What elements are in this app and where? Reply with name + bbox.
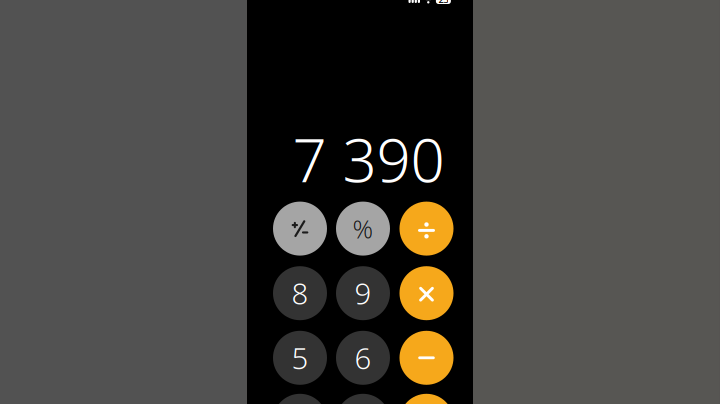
button[interactable]: Plus — [399, 394, 453, 404]
button[interactable]: 8 — [273, 266, 327, 320]
staticText: 23 — [438, 0, 448, 6]
button[interactable]: 9 — [336, 266, 390, 320]
button[interactable]: Multiply — [399, 266, 453, 320]
staticText: 8 — [291, 274, 308, 313]
staticText: 5 — [291, 338, 308, 377]
button[interactable]: % — [336, 202, 390, 256]
button[interactable]: Minus — [399, 331, 453, 385]
button[interactable]: Divide — [399, 202, 453, 256]
staticText: 6 — [354, 338, 371, 377]
button[interactable]: Plus Minus — [273, 202, 327, 256]
button[interactable]: 5 — [273, 331, 327, 385]
button[interactable]: 3 — [336, 394, 390, 404]
button[interactable]: 2 — [273, 394, 327, 404]
staticText: 9 — [354, 274, 371, 313]
staticText: 7 390 — [292, 119, 444, 199]
button[interactable]: 6 — [336, 331, 390, 385]
staticText: % — [352, 212, 373, 245]
